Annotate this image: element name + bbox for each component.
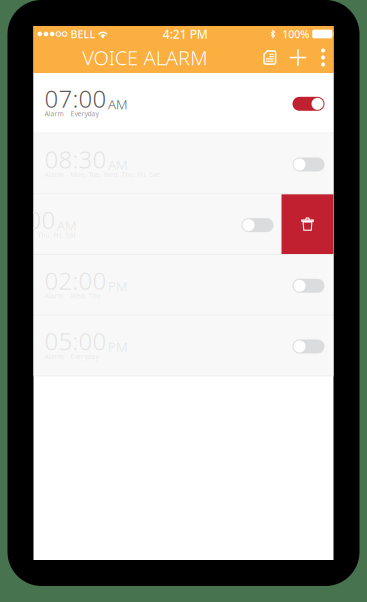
staticText: 10:00	[0, 204, 55, 236]
staticText: Everyday	[70, 352, 98, 361]
staticText: AM	[108, 156, 128, 173]
button[interactable]: Delete alarm	[281, 194, 333, 254]
staticText: 4:21 PM	[163, 26, 208, 42]
button[interactable]: 08:30	[33, 134, 333, 193]
staticText: Everyday	[70, 109, 98, 118]
staticText: BELL	[70, 27, 95, 41]
staticText: Alarm	[44, 352, 63, 361]
button[interactable]: 07:00	[33, 73, 333, 133]
staticText: 08:30	[44, 143, 106, 175]
button[interactable]: 05:00	[33, 316, 333, 375]
button[interactable]: Add alarm	[284, 42, 312, 73]
button[interactable]: More options	[312, 42, 334, 73]
staticText: VOICE ALARM	[82, 44, 207, 71]
button[interactable]: Scripts	[256, 42, 284, 73]
staticText: 100%	[282, 27, 309, 41]
staticText: Mon, Tue, Wed, Thu, Fri, Sat	[70, 170, 159, 179]
staticText: 07:00	[44, 82, 106, 114]
staticText: Alarm	[44, 291, 63, 300]
staticText: Wed, Thu	[70, 291, 100, 300]
staticText: Alarm	[44, 109, 63, 118]
staticText: AM	[108, 95, 128, 113]
staticText: Wed, Thu, Fri, Sat	[19, 231, 75, 240]
staticText: PM	[108, 277, 128, 295]
staticText: Alarm	[0, 231, 12, 240]
staticText: AM	[57, 216, 77, 234]
staticText: Alarm	[44, 170, 63, 179]
staticText: PM	[108, 338, 128, 355]
staticText: 05:00	[44, 325, 106, 357]
staticText: 02:00	[44, 264, 106, 296]
button[interactable]: 02:00	[33, 255, 333, 315]
